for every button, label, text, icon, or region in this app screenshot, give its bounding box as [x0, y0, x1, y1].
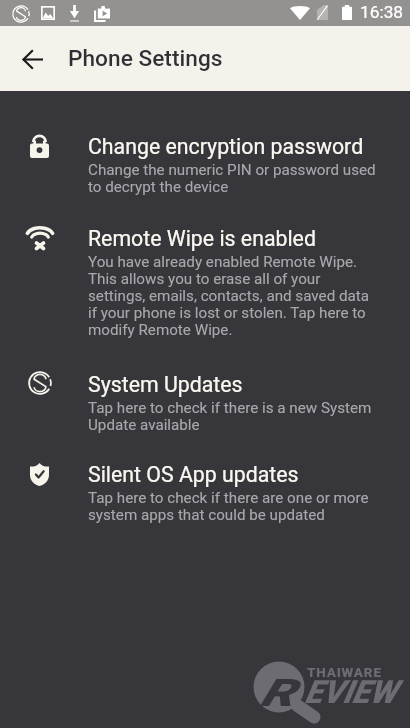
staticText: Tap here to check if there is a new Syst… — [88, 399, 372, 434]
staticText: 16:38 — [360, 2, 404, 22]
staticText: Tap here to check if there are one or mo… — [88, 489, 369, 524]
staticText: R — [260, 671, 295, 716]
button[interactable]: Back — [10, 37, 54, 81]
staticText: You have already enabled Remote Wipe. Th… — [88, 253, 370, 339]
button[interactable]: Remote Wipe is enabled — [0, 226, 410, 337]
staticText: Change encryption password — [88, 134, 364, 159]
staticText: System Updates — [88, 372, 243, 397]
button[interactable]: System Updates — [0, 372, 410, 432]
button[interactable]: Silent OS App updates — [0, 462, 410, 522]
button[interactable]: Change encryption password — [0, 134, 410, 194]
staticText: EVIEW — [305, 673, 397, 711]
staticText: Change the numeric PIN or password used … — [88, 161, 376, 196]
staticText: THAIWARE — [307, 664, 382, 680]
staticText: Phone Settings — [68, 45, 223, 72]
staticText: Silent OS App updates — [88, 462, 299, 487]
staticText: Remote Wipe is enabled — [88, 226, 316, 251]
